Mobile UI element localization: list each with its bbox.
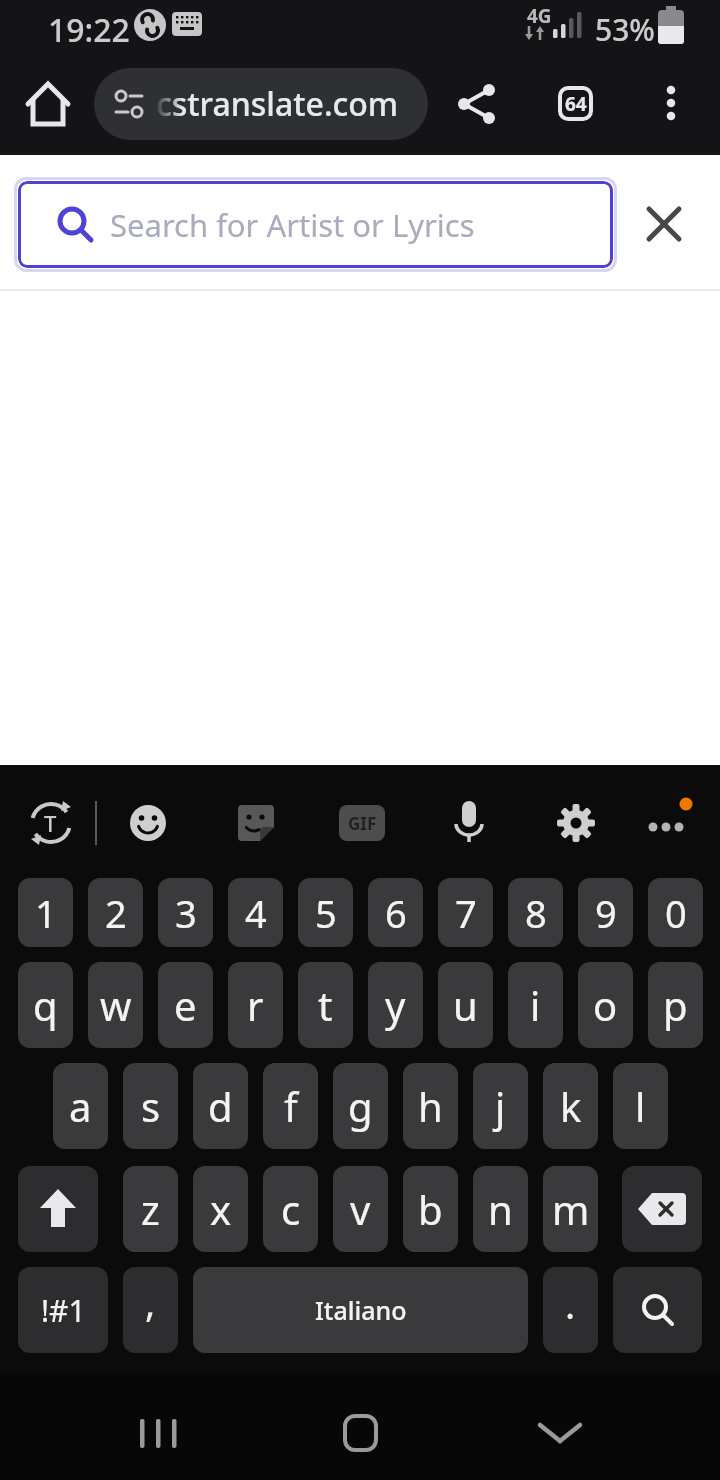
button[interactable]: e [158,962,213,1048]
staticText: 7 [455,887,477,939]
button[interactable]: !#1 [18,1267,108,1353]
staticText: d [208,1079,233,1133]
button[interactable]: 64 [558,86,593,121]
staticText: y [385,978,406,1032]
staticText: x [210,1182,232,1236]
button[interactable]: s [123,1063,178,1149]
button[interactable] [556,803,596,843]
button[interactable]: 0 [648,878,703,947]
staticText: t [318,978,333,1032]
button[interactable]: p [648,962,703,1048]
button[interactable] [646,206,682,242]
button[interactable]: z [123,1166,178,1252]
staticText: f [284,1079,298,1133]
staticText: 4 [245,887,267,939]
button[interactable]: v [333,1166,388,1252]
button[interactable] [538,1421,582,1447]
staticText: 2 [105,887,127,939]
staticText: b [418,1182,443,1236]
button[interactable] [622,1166,702,1252]
button[interactable] [236,803,276,843]
staticText: m [552,1182,590,1236]
staticText: h [418,1079,443,1133]
staticText: u [453,978,478,1032]
staticText: z [141,1182,160,1236]
staticText: q [33,978,58,1032]
staticText: k [560,1079,582,1133]
staticText: Italiano [315,1293,407,1327]
button[interactable] [656,86,686,122]
staticText: s [141,1079,161,1133]
button[interactable]: b [403,1166,458,1252]
button[interactable]: 5 [298,878,353,947]
button[interactable]: 2 [88,878,143,947]
button[interactable] [613,1267,702,1353]
button[interactable]: f [263,1063,318,1149]
button[interactable]: Italiano [193,1267,528,1353]
button[interactable] [27,799,75,847]
button[interactable] [26,82,70,126]
staticText: g [348,1079,373,1133]
button[interactable]: r [228,962,283,1048]
button[interactable]: h [403,1063,458,1149]
staticText: 6 [385,887,407,939]
button[interactable]: a [53,1063,108,1149]
button[interactable]: 3 [158,878,213,947]
button[interactable]: 9 [578,878,633,947]
button[interactable]: o [578,962,633,1048]
button[interactable]: t [298,962,353,1048]
button[interactable]: k [543,1063,598,1149]
button[interactable]: n [473,1166,528,1252]
button[interactable]: l [613,1063,668,1149]
staticText: c [281,1182,301,1236]
staticText: 53% [595,9,655,50]
staticText: !#1 [41,1290,86,1331]
button[interactable] [449,799,489,847]
staticText: a [69,1079,92,1133]
staticText: cstranslate.com [156,82,399,126]
staticText: 19:22 [48,8,130,52]
staticText: 8 [525,887,547,939]
staticText: w [100,978,132,1032]
staticText: 1 [35,887,57,939]
button[interactable]: 1 [18,878,73,947]
button[interactable]: Search for Artist or Lyrics [18,181,613,268]
button[interactable]: i [508,962,563,1048]
button[interactable]: y [368,962,423,1048]
button[interactable]: 7 [438,878,493,947]
button[interactable]: w [88,962,143,1048]
button[interactable]: g [333,1063,388,1149]
staticText: T [44,808,57,838]
button[interactable] [454,82,498,126]
button[interactable]: GIF [339,805,385,841]
button[interactable]: , [123,1267,178,1353]
button[interactable]: cstranslate.com [94,68,428,140]
staticText: GIF [348,812,377,835]
button[interactable]: 8 [508,878,563,947]
button[interactable]: m [543,1166,598,1252]
staticText: v [350,1182,371,1236]
staticText: r [247,978,264,1032]
button[interactable]: x [193,1166,248,1252]
button[interactable]: j [473,1063,528,1149]
button[interactable]: c [263,1166,318,1252]
staticText: n [488,1182,513,1236]
button[interactable]: 4 [228,878,283,947]
button[interactable]: . [543,1267,598,1353]
button[interactable]: 6 [368,878,423,947]
staticText: 64 [565,91,587,117]
button[interactable]: d [193,1063,248,1149]
staticText: 9 [595,887,617,939]
staticText: Search for Artist or Lyrics [110,204,475,246]
button[interactable] [642,799,694,847]
button[interactable] [18,1166,98,1252]
staticText: p [663,978,688,1032]
staticText: 3 [175,887,197,939]
button[interactable]: u [438,962,493,1048]
button[interactable] [128,803,168,843]
button[interactable] [140,1419,180,1449]
button[interactable] [343,1414,378,1452]
button[interactable]: q [18,962,73,1048]
staticText: o [593,978,618,1032]
staticText: 0 [665,887,687,939]
